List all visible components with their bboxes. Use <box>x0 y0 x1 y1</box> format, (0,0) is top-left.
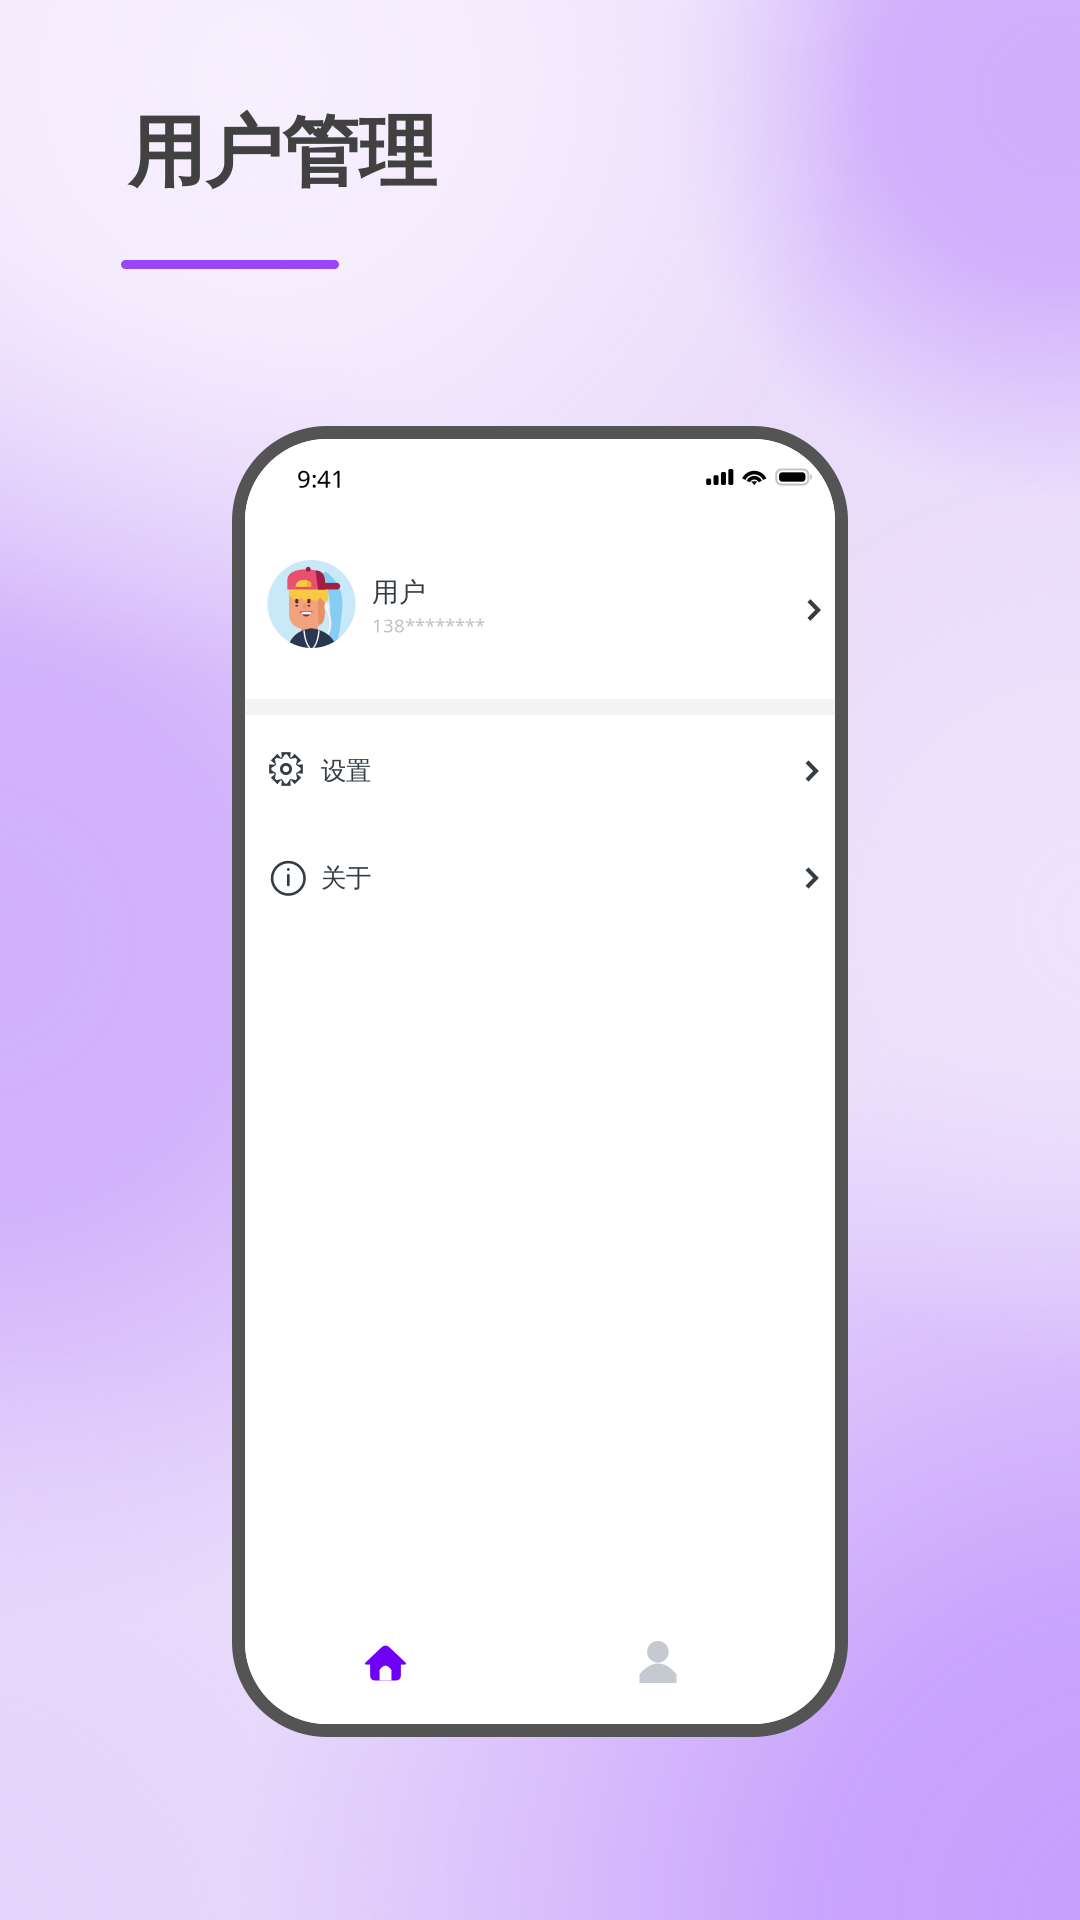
button[interactable]: 关于 <box>245 822 835 929</box>
staticText: 关于 <box>321 862 371 893</box>
staticText: 138******** <box>372 613 485 638</box>
button[interactable]: Profile <box>568 1612 748 1712</box>
staticText: 设置 <box>321 755 371 786</box>
button[interactable]: 用户 <box>245 439 835 699</box>
button[interactable]: Home <box>295 1613 475 1713</box>
staticText: 用户管理 <box>128 105 436 200</box>
button[interactable]: 设置 <box>245 715 835 822</box>
staticText: 用户 <box>372 576 426 609</box>
staticText: 9:41 <box>297 463 345 494</box>
